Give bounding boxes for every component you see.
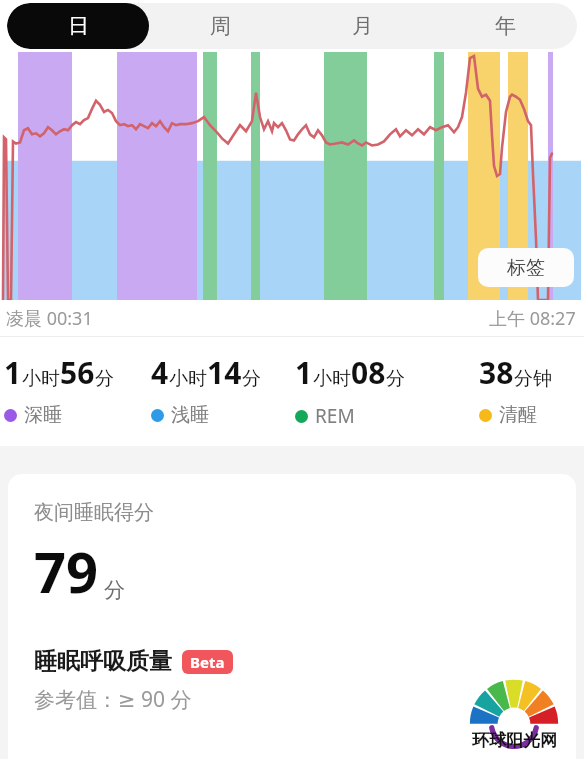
staticText: 参考值：≥ 90 分: [34, 685, 192, 714]
staticText: 浅睡: [171, 403, 209, 427]
button[interactable]: 日: [7, 3, 149, 49]
button[interactable]: 夜间睡眠得分: [8, 474, 576, 759]
staticText: 14: [207, 352, 242, 393]
staticText: 月: [352, 13, 373, 39]
staticText: 环球阳光网: [472, 730, 557, 751]
staticText: 08: [351, 352, 386, 393]
staticText: 分: [386, 367, 405, 391]
staticText: 小时: [169, 367, 207, 391]
staticText: 小时: [22, 367, 60, 391]
staticText: 1: [295, 352, 313, 393]
button[interactable]: 1: [295, 352, 405, 429]
staticText: 分: [104, 577, 125, 603]
staticText: 标签: [507, 256, 545, 280]
staticText: 睡眠呼吸质量: [34, 647, 172, 676]
staticText: 日: [68, 13, 89, 39]
staticText: 56: [60, 352, 95, 393]
staticText: 周: [210, 13, 231, 39]
button[interactable]: 月: [291, 3, 434, 49]
button[interactable]: 4: [151, 352, 261, 427]
staticText: Beta: [190, 652, 225, 672]
staticText: 凌晨 00:31: [6, 306, 93, 331]
button[interactable]: 1: [4, 352, 114, 427]
staticText: 分: [242, 367, 261, 391]
staticText: 1: [4, 352, 22, 393]
staticText: 夜间睡眠得分: [34, 500, 154, 525]
staticText: 深睡: [24, 403, 62, 427]
button[interactable]: 标签: [478, 248, 574, 287]
staticText: 38: [479, 352, 514, 393]
staticText: 4: [151, 352, 169, 393]
button[interactable]: 38: [479, 352, 552, 427]
staticText: REM: [315, 403, 355, 429]
staticText: 小时: [313, 367, 351, 391]
staticText: 分钟: [514, 367, 552, 391]
staticText: 79: [34, 533, 99, 609]
staticText: 上午 08:27: [489, 306, 576, 331]
button[interactable]: 年: [434, 3, 577, 49]
staticText: 分: [95, 367, 114, 391]
staticText: 清醒: [499, 403, 537, 427]
staticText: 年: [495, 13, 516, 39]
button[interactable]: 周: [149, 3, 291, 49]
